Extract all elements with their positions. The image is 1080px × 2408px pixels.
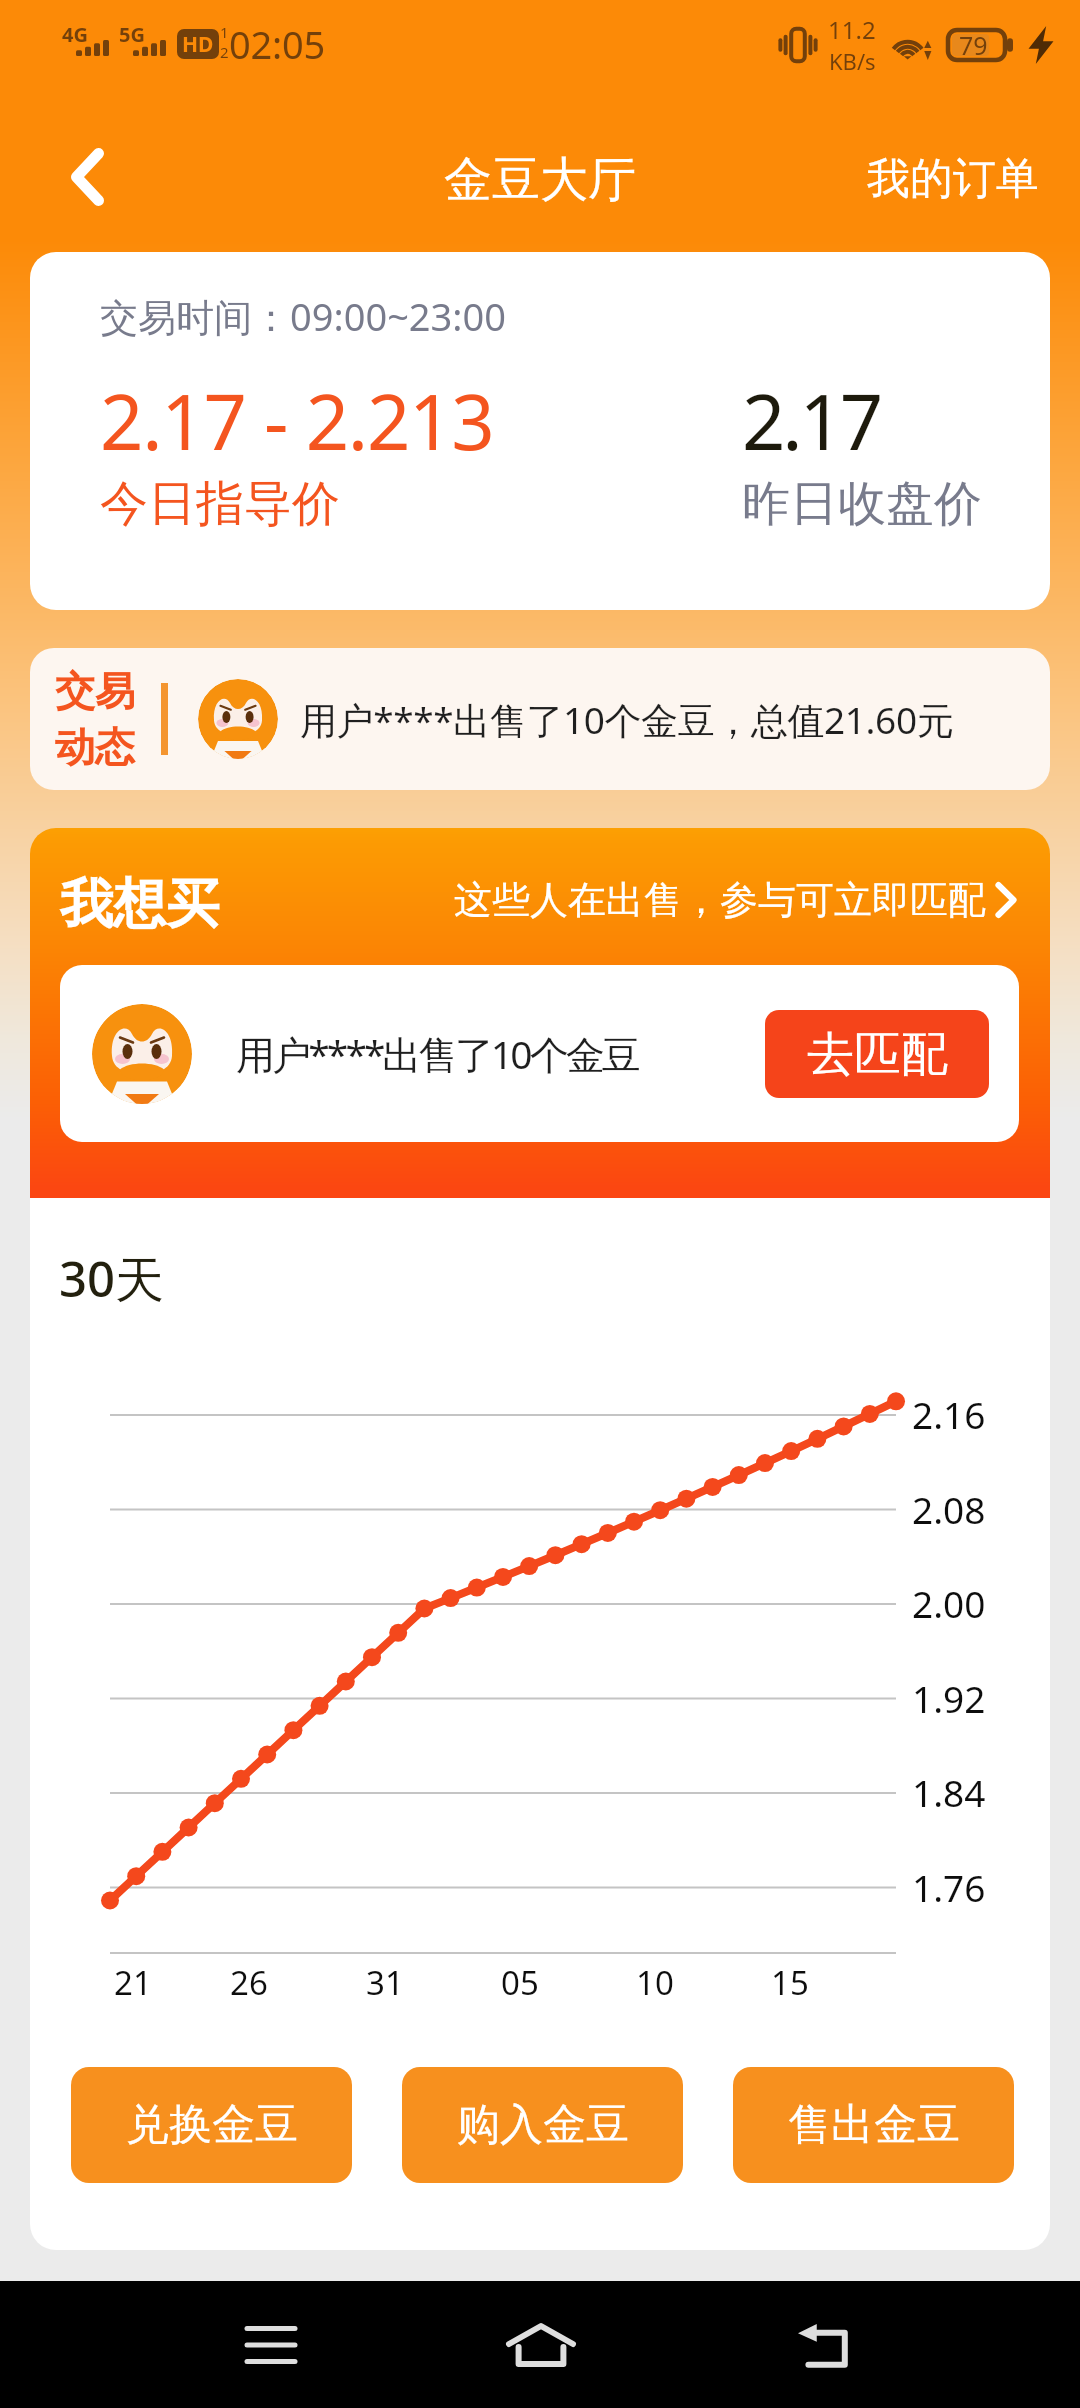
staticText: 昨日收盘价 [742, 474, 982, 534]
button[interactable]: Recent apps [211, 2285, 331, 2405]
staticText: 售出金豆 [788, 2098, 960, 2152]
button[interactable]: 这些人在出售，参与可立即匹配 [446, 870, 1024, 930]
staticText: 5G [119, 21, 145, 48]
staticText: 05 [501, 1960, 539, 2005]
button[interactable]: 购入金豆 [402, 2067, 683, 2183]
staticText: 10 [636, 1960, 674, 2005]
staticText: 2.00 [912, 1578, 986, 1628]
staticText: 1.76 [912, 1862, 986, 1912]
staticText: 2 [220, 42, 229, 62]
button[interactable]: 去匹配 [765, 1010, 989, 1098]
staticText: 购入金豆 [457, 2098, 629, 2152]
staticText: 2.16 [912, 1389, 986, 1439]
button[interactable]: 售出金豆 [733, 2067, 1014, 2183]
staticText: 4G [62, 21, 88, 48]
staticText: 2.17 - 2.213 [100, 369, 494, 473]
button[interactable]: 我的订单 [821, 132, 1080, 226]
staticText: 1.92 [912, 1673, 986, 1723]
staticText: 这些人在出售，参与可立即匹配 [454, 876, 986, 924]
staticText: 兑换金豆 [126, 2098, 298, 2152]
button[interactable]: Home [481, 2285, 601, 2405]
staticText: 金豆大厅 [444, 150, 636, 210]
staticText: 交易时间：09:00~23:00 [100, 290, 506, 342]
staticText: 交易 动态 [55, 666, 135, 773]
staticText: 15 [771, 1960, 809, 2005]
button[interactable]: 交易 动态 [30, 648, 1050, 790]
staticText: 用户****出售了10个金豆 [236, 1027, 638, 1080]
staticText: 79 [959, 28, 988, 62]
button[interactable]: Back [764, 2285, 884, 2405]
staticText: 今日指导价 [100, 474, 340, 534]
staticText: HD [182, 30, 214, 59]
staticText: 11.2 [828, 13, 876, 46]
staticText: 用户****出售了10个金豆，总值21.60元 [300, 694, 954, 745]
staticText: 我的订单 [867, 152, 1039, 206]
staticText: 02:05 [229, 18, 326, 70]
staticText: 2.17 [742, 369, 880, 473]
button[interactable]: 用户****出售了10个金豆 [60, 965, 1019, 1142]
staticText: 26 [230, 1960, 268, 2005]
button[interactable]: Back [32, 122, 142, 232]
staticText: KB/s [829, 46, 876, 76]
staticText: 2.08 [912, 1484, 986, 1534]
staticText: 21 [114, 1960, 152, 2005]
button[interactable]: 兑换金豆 [71, 2067, 352, 2183]
staticText: 我想买 [60, 871, 219, 938]
staticText: 31 [366, 1960, 404, 2005]
staticText: 1.84 [912, 1767, 986, 1817]
staticText: 1 [220, 22, 229, 42]
staticText: 30天 [59, 1245, 165, 1312]
staticText: 去匹配 [807, 1025, 948, 1084]
